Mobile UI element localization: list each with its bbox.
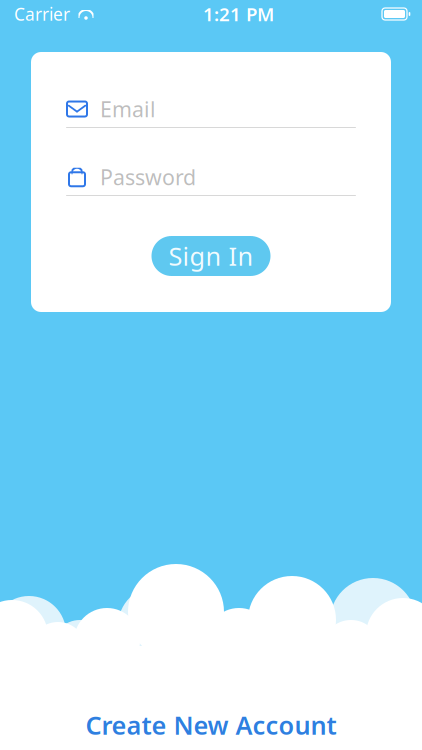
staticText: 1:21 PM <box>203 2 274 26</box>
staticText: Create New Account <box>85 708 336 742</box>
staticText: Sign In <box>168 239 253 273</box>
staticText: Carrier <box>14 2 70 25</box>
button[interactable]: Create New Account <box>0 698 422 750</box>
staticText: Password <box>100 163 196 191</box>
button[interactable]: Sign In <box>151 236 270 276</box>
staticText: Email <box>100 95 156 123</box>
